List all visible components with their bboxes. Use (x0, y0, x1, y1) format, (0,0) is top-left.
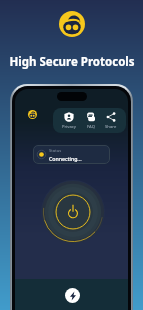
staticText: Privacy (62, 124, 76, 130)
button[interactable]: Share (104, 109, 118, 133)
button[interactable]: Power (41, 180, 105, 244)
button[interactable]: Privacy (61, 109, 77, 133)
button[interactable]: FAQ (85, 109, 97, 133)
staticText: FAQ (87, 124, 95, 130)
button[interactable]: Status (33, 145, 110, 164)
staticText: Status (49, 148, 62, 154)
staticText: High Secure Protocols (9, 54, 135, 70)
button[interactable]: Boost (65, 288, 80, 303)
staticText: Share (105, 124, 117, 130)
staticText: Connecting... (49, 155, 82, 162)
